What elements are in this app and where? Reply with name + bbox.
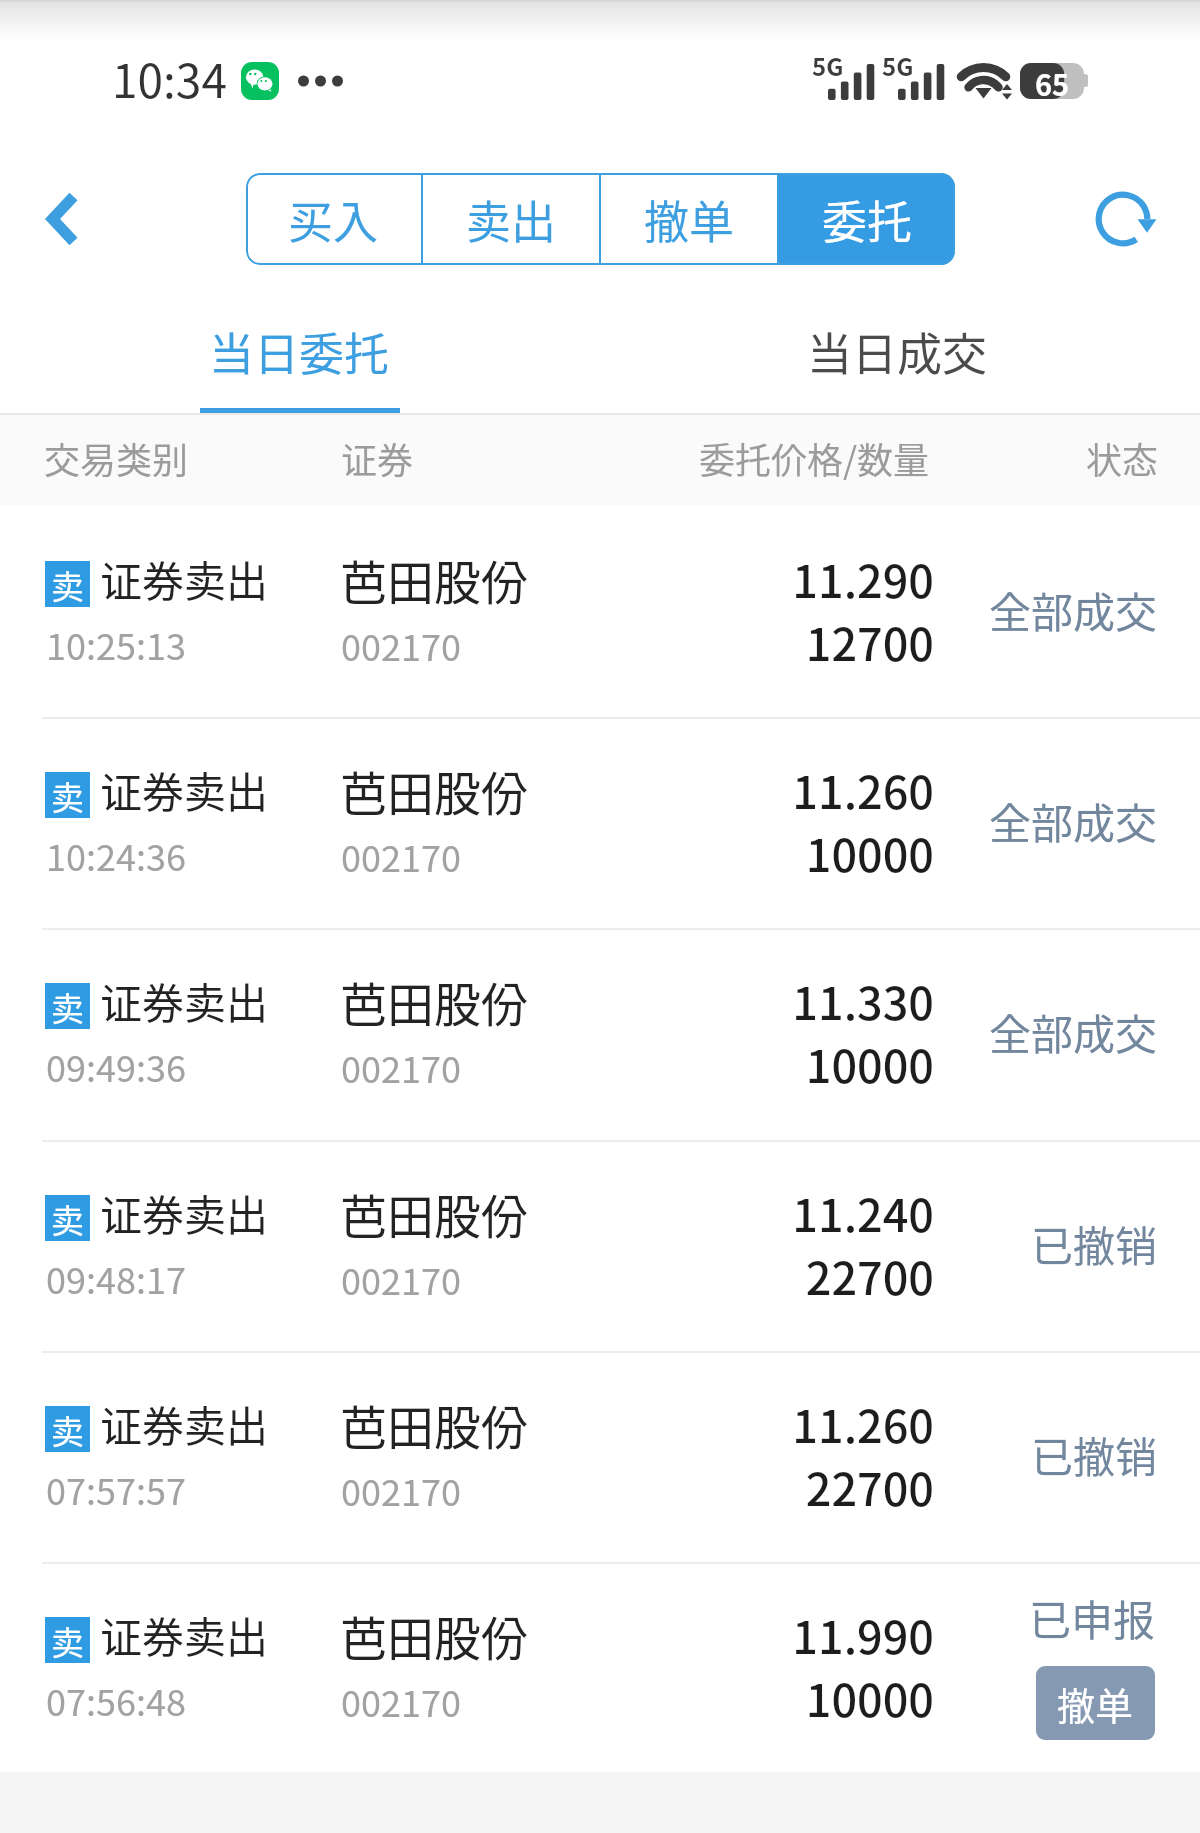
button[interactable]: 卖 (0, 716, 1200, 927)
staticText: 证券 (341, 432, 414, 484)
staticText: 11.260 (634, 1391, 934, 1456)
staticText: 芭田股份 (340, 967, 528, 1035)
staticText: 卖 (51, 1617, 84, 1663)
staticText: 当日委托 (209, 319, 390, 384)
staticText: 芭田股份 (340, 756, 528, 824)
staticText: 委托价格/数量 (699, 432, 930, 484)
staticText: 002170 (341, 1253, 461, 1305)
staticText: 全部成交 (853, 790, 1157, 851)
staticText: 11.330 (634, 968, 934, 1033)
staticText: 22700 (634, 1243, 934, 1308)
staticText: 09:48:17 (46, 1252, 186, 1304)
staticText: 11.990 (634, 1602, 934, 1667)
staticText: 卖 (51, 1195, 84, 1241)
staticText: 002170 (341, 1675, 461, 1727)
button[interactable]: 委托 (779, 173, 955, 265)
staticText: 芭田股份 (340, 545, 528, 613)
staticText: 09:49:36 (46, 1040, 186, 1092)
staticText: 已申报 (1029, 1587, 1156, 1648)
staticText: 5G (882, 48, 914, 83)
staticText: 002170 (341, 1041, 461, 1093)
staticText: 002170 (341, 830, 461, 882)
staticText: 全部成交 (853, 1001, 1157, 1062)
staticText: 07:57:57 (46, 1463, 186, 1515)
staticText: 证券卖出 (100, 1604, 269, 1665)
staticText: 11.260 (634, 757, 934, 822)
button[interactable]: Refresh (1083, 179, 1163, 259)
button[interactable]: 卖 (0, 927, 1200, 1138)
staticText: 已撤销 (853, 1424, 1157, 1485)
staticText: 证券卖出 (100, 970, 269, 1031)
staticText: 当日成交 (807, 319, 988, 384)
staticText: 卖出 (466, 187, 557, 252)
staticText: 证券卖出 (100, 548, 269, 609)
staticText: 买入 (288, 187, 379, 252)
staticText: 12700 (634, 609, 934, 674)
button[interactable]: 卖 (0, 1561, 1200, 1772)
staticText: 委托 (822, 187, 913, 252)
staticText: 07:56:48 (46, 1674, 186, 1726)
button[interactable]: 卖出 (423, 173, 599, 265)
staticText: 卖 (51, 983, 84, 1029)
staticText: 交易类别 (44, 432, 189, 484)
staticText: 11.240 (634, 1180, 934, 1245)
staticText: 证券卖出 (100, 1393, 269, 1454)
staticText: 撤单 (1057, 1676, 1134, 1731)
staticText: 芭田股份 (340, 1390, 528, 1458)
staticText: 10:34 (112, 45, 227, 112)
button[interactable]: 当日委托 (0, 292, 600, 408)
staticText: 10:24:36 (46, 829, 186, 881)
button[interactable]: 买入 (246, 173, 421, 265)
staticText: 5G (812, 48, 844, 83)
button[interactable]: 撤单 (601, 173, 777, 265)
staticText: 全部成交 (853, 579, 1157, 640)
staticText: 卖 (51, 772, 84, 818)
button[interactable]: 当日成交 (600, 292, 1200, 408)
staticText: 11.290 (634, 546, 934, 611)
staticText: 10000 (634, 820, 934, 885)
staticText: 10000 (634, 1031, 934, 1096)
button[interactable]: 卖 (0, 1350, 1200, 1561)
staticText: 证券卖出 (100, 759, 269, 820)
button[interactable]: 卖 (0, 1139, 1200, 1350)
staticText: 芭田股份 (340, 1179, 528, 1247)
button[interactable]: Back (20, 176, 106, 262)
staticText: 证券卖出 (100, 1182, 269, 1243)
staticText: 002170 (341, 1464, 461, 1516)
staticText: 卖 (51, 1406, 84, 1452)
button[interactable]: 撤单 (1036, 1666, 1155, 1740)
staticText: 卖 (51, 561, 84, 607)
staticText: 状态 (1086, 432, 1159, 484)
staticText: 10:25:13 (46, 618, 186, 670)
staticText: 10000 (634, 1665, 934, 1730)
staticText: 撤单 (644, 187, 735, 252)
button[interactable]: 卖 (0, 505, 1200, 716)
staticText: 已撤销 (853, 1213, 1157, 1274)
staticText: 002170 (341, 619, 461, 671)
staticText: 65 (1035, 62, 1070, 104)
staticText: 芭田股份 (340, 1601, 528, 1669)
staticText: 22700 (634, 1454, 934, 1519)
